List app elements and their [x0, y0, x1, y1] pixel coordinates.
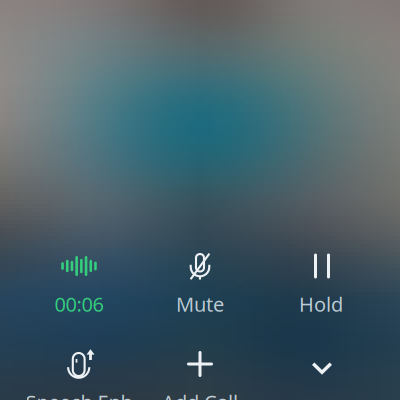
staticText: 00:06: [54, 291, 103, 317]
staticText: Add Call: [162, 389, 238, 400]
button[interactable]: Speech Enhance: [0, 0, 400, 400]
button[interactable]: More: [0, 0, 400, 400]
button[interactable]: Hold: [0, 0, 400, 400]
staticText: Mute: [176, 291, 224, 317]
button[interactable]: Call duration: [0, 0, 400, 400]
button[interactable]: Mute: [0, 0, 400, 400]
button[interactable]: Add Call: [0, 0, 400, 400]
staticText: Speech Enh: [25, 389, 132, 400]
staticText: Hold: [299, 291, 343, 317]
